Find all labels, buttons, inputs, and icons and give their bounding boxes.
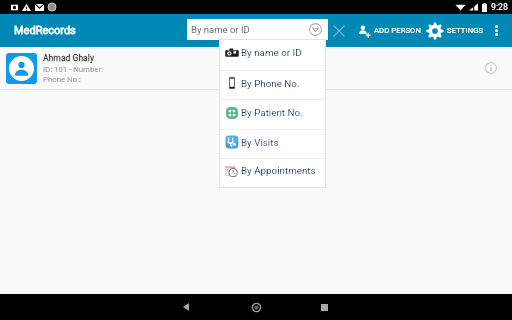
button[interactable]: Clear search [331, 23, 346, 38]
button[interactable]: SETTINGS [420, 14, 490, 47]
staticText: By name or ID [241, 47, 302, 58]
button[interactable]: By name or ID [187, 19, 328, 40]
staticText: Phone No.: [43, 75, 81, 84]
staticText: ADD PERSON [374, 26, 421, 35]
button[interactable]: By Patient No. [219, 100, 326, 129]
staticText: By Appointments [241, 165, 316, 176]
button[interactable]: ADD PERSON [351, 14, 427, 47]
staticText: ID: 101 - Number: [43, 65, 103, 74]
staticText: SETTINGS [447, 26, 484, 35]
button[interactable]: By name or ID [219, 39, 326, 70]
staticText: By name or ID [191, 24, 250, 35]
button[interactable]: Ahmad Ghaly [0, 47, 512, 89]
button[interactable]: By Appointments [219, 159, 326, 186]
staticText: 9:28 [491, 2, 508, 12]
button[interactable]: Back [162, 294, 210, 320]
staticText: Ahmad Ghaly [43, 53, 94, 63]
button[interactable]: By Phone No. [219, 71, 326, 99]
staticText: MedRecords [14, 24, 76, 37]
button[interactable]: Info [482, 59, 500, 77]
button[interactable]: By Visits [219, 130, 326, 158]
button[interactable]: More options [486, 14, 506, 47]
button[interactable]: Recent apps [300, 294, 348, 320]
staticText: By Patient No. [241, 107, 303, 118]
staticText: By Visits [241, 137, 279, 148]
staticText: By Phone No. [241, 78, 300, 89]
button[interactable]: Home [232, 294, 280, 320]
